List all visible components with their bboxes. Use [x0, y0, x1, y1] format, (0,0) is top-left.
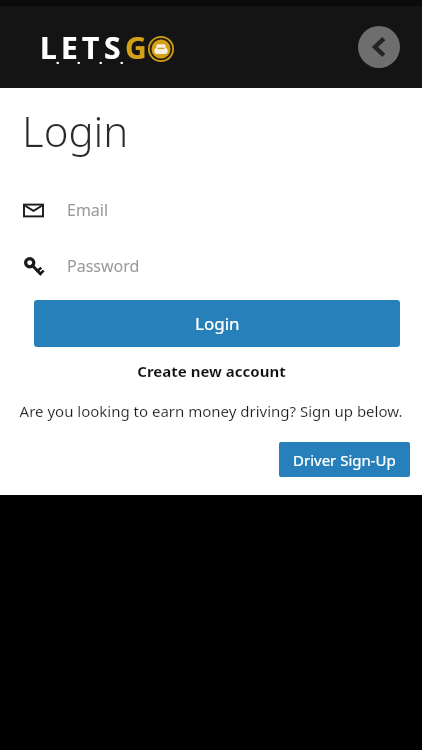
staticText: Login	[22, 102, 129, 159]
button[interactable]: Back	[358, 26, 400, 68]
staticText: Driver Sign-Up	[293, 450, 396, 470]
button[interactable]: Password	[0, 245, 422, 287]
staticText: S	[104, 27, 121, 68]
staticText: Login	[195, 312, 240, 335]
staticText: .	[120, 50, 124, 68]
staticText: L	[40, 27, 57, 68]
staticText: Create new account	[137, 361, 286, 381]
button[interactable]: Driver Sign-Up	[279, 442, 410, 477]
staticText: T	[82, 27, 100, 68]
staticText: Password	[67, 255, 140, 277]
staticText: .	[56, 50, 60, 68]
staticText: G	[125, 27, 147, 68]
button[interactable]: Create new account	[0, 361, 422, 381]
staticText: E	[61, 27, 78, 68]
staticText: Are you looking to earn money driving? S…	[14, 401, 408, 421]
staticText: Email	[67, 199, 109, 221]
staticText: .	[77, 50, 81, 68]
button[interactable]: Login	[34, 300, 400, 347]
staticText: .	[99, 50, 103, 68]
button[interactable]: Email	[0, 189, 422, 231]
